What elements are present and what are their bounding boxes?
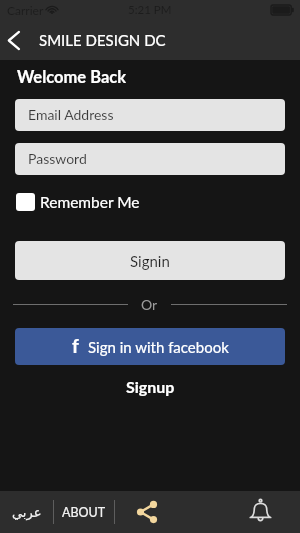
button[interactable]: Password bbox=[15, 143, 285, 175]
button[interactable]: Signin bbox=[15, 241, 285, 280]
staticText: ABOUT bbox=[62, 505, 106, 520]
staticText: عربي bbox=[12, 505, 42, 520]
staticText: f bbox=[72, 334, 79, 357]
staticText: Carrier bbox=[7, 3, 44, 17]
button[interactable]: ABOUT bbox=[54, 491, 114, 533]
button[interactable]: Email Address bbox=[15, 99, 285, 131]
button[interactable]: Share bbox=[115, 491, 179, 533]
staticText: SMILE DESIGN DC bbox=[39, 31, 166, 49]
button[interactable]: Notifications bbox=[225, 491, 295, 533]
button[interactable]: Back bbox=[0, 20, 27, 60]
staticText: Email Address bbox=[28, 106, 114, 123]
staticText: Or bbox=[141, 296, 158, 312]
staticText: Remember Me bbox=[40, 193, 140, 212]
button[interactable]: Remember Me bbox=[16, 192, 140, 212]
staticText: Signin bbox=[130, 252, 170, 270]
button[interactable]: Signup bbox=[126, 377, 175, 396]
staticText: Password bbox=[28, 150, 87, 167]
button[interactable]: عربي bbox=[0, 491, 53, 533]
staticText: 5:21 PM bbox=[128, 3, 172, 17]
staticText: Sign in with facebook bbox=[88, 338, 229, 356]
staticText: Welcome Back bbox=[17, 67, 127, 87]
button[interactable]: f bbox=[15, 328, 285, 365]
